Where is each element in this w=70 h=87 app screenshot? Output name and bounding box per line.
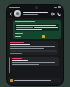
button[interactable] <box>9 41 58 55</box>
button[interactable]: Reaction <box>42 35 45 38</box>
button[interactable] <box>11 57 59 66</box>
button[interactable]: Reaction <box>13 20 61 39</box>
button[interactable]: Back <box>9 12 13 16</box>
button[interactable] <box>9 78 61 83</box>
button[interactable]: Back <box>7 9 63 18</box>
button[interactable]: Video call <box>51 12 55 16</box>
button[interactable] <box>14 10 21 17</box>
button[interactable]: Call <box>57 12 61 16</box>
